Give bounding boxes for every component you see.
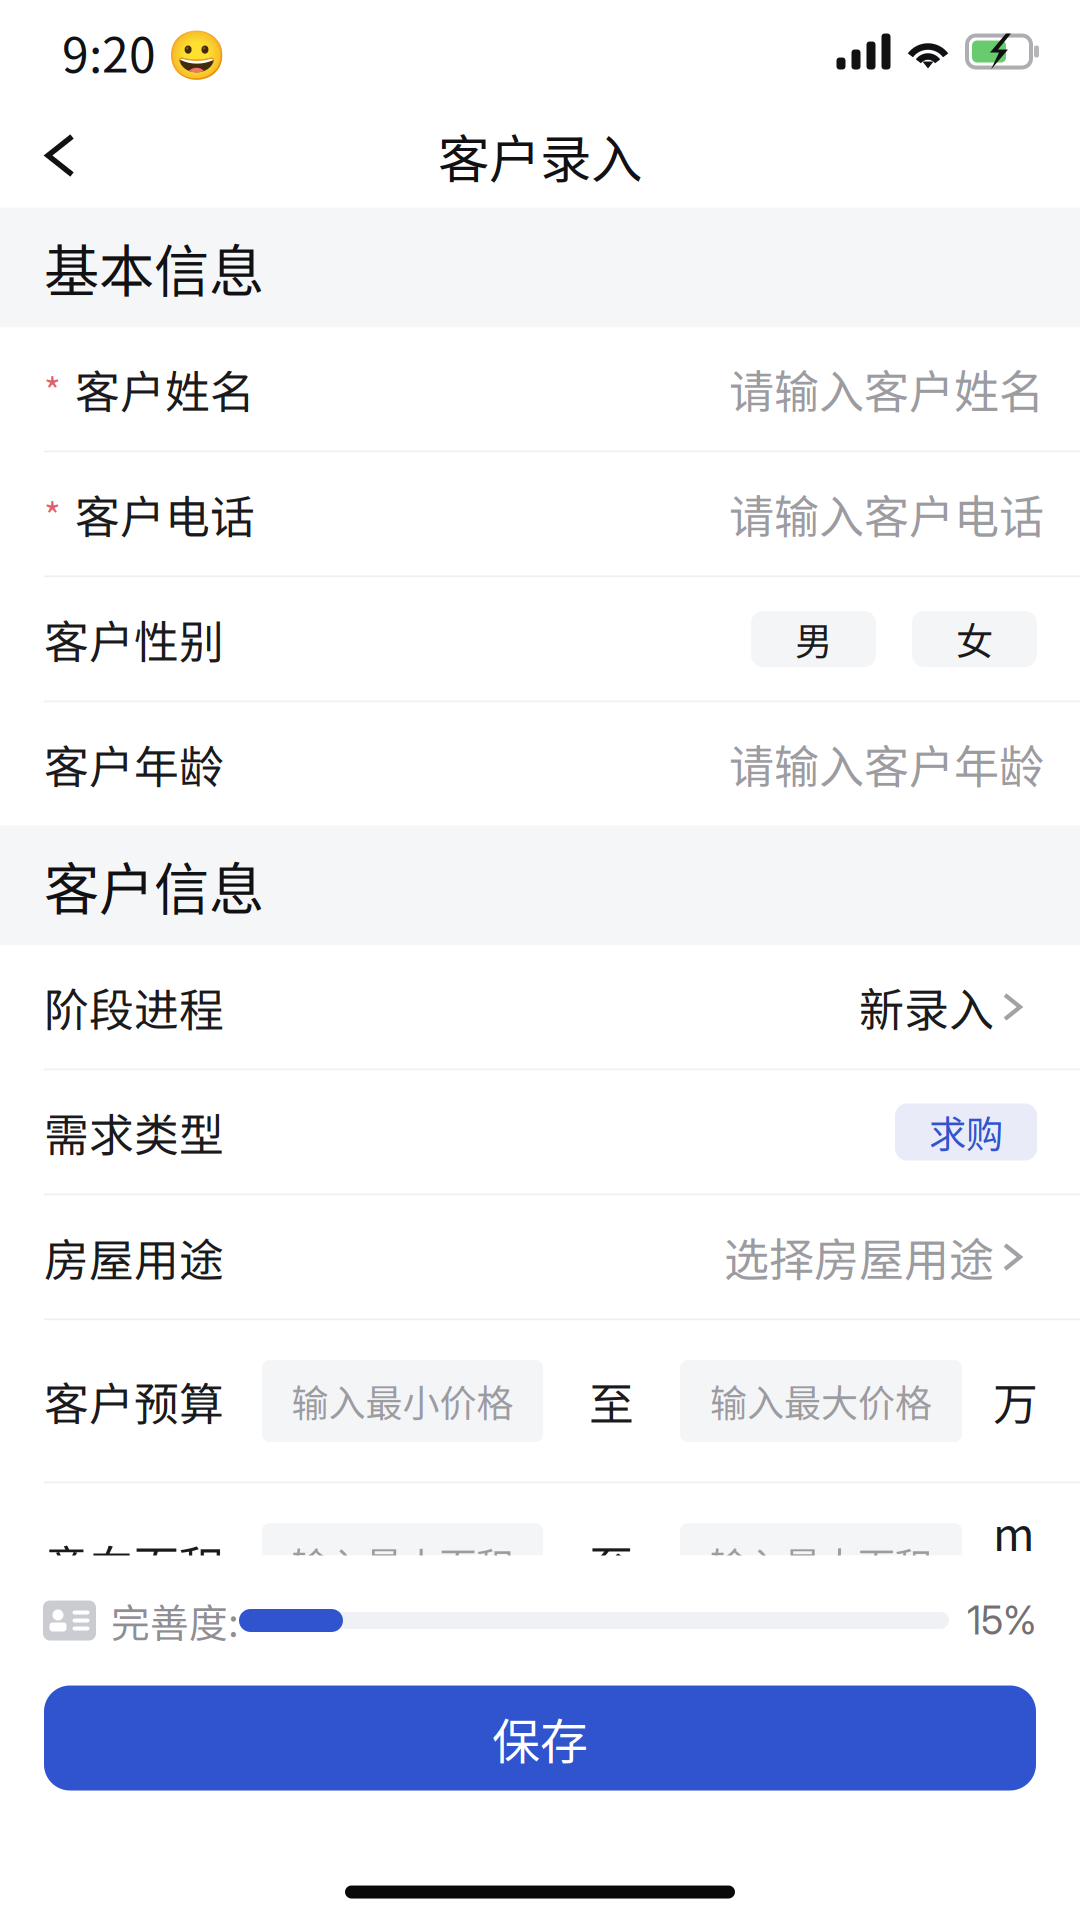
staticText: 阶段进程 bbox=[44, 975, 224, 1039]
staticText: 求购 bbox=[929, 1105, 1003, 1159]
staticText: 输入最小价格 bbox=[291, 1374, 513, 1428]
button[interactable]: 保存 bbox=[44, 1685, 1036, 1790]
staticText: * bbox=[44, 363, 61, 415]
staticText: 输入最大面积 bbox=[710, 1537, 932, 1591]
staticText: 客户年龄 bbox=[44, 732, 224, 796]
staticText: * bbox=[44, 488, 61, 540]
staticText: 客户电话 bbox=[75, 482, 255, 546]
staticText: 保存 bbox=[492, 1703, 588, 1773]
staticText: 9:20 😀 bbox=[62, 17, 227, 86]
staticText: 请输入客户姓名 bbox=[729, 356, 1044, 422]
staticText: 输入最大价格 bbox=[710, 1374, 932, 1428]
staticText: 请输入客户电话 bbox=[729, 481, 1044, 547]
staticText: 万 bbox=[993, 1369, 1038, 1433]
staticText: 完善度: bbox=[111, 1592, 239, 1648]
staticText: 新录入 bbox=[859, 974, 994, 1040]
staticText: 至 bbox=[589, 1532, 634, 1596]
staticText: 输入最小面积 bbox=[291, 1537, 513, 1591]
staticText: 客户录入 bbox=[438, 118, 642, 193]
staticText: 15% bbox=[967, 1597, 1037, 1644]
staticText: 客户姓名 bbox=[75, 357, 255, 421]
staticText: 选择房屋用途 bbox=[724, 1224, 994, 1290]
staticText: m² bbox=[993, 1499, 1034, 1629]
staticText: 基本信息 bbox=[44, 227, 264, 307]
staticText: 客户预算 bbox=[44, 1369, 224, 1433]
staticText: 客户信息 bbox=[44, 845, 264, 925]
staticText: 女 bbox=[956, 612, 993, 666]
button[interactable]: 求购 bbox=[895, 1103, 1037, 1160]
staticText: 客户性别 bbox=[44, 607, 224, 671]
staticText: 意向面积 bbox=[44, 1532, 224, 1596]
button[interactable]: Back bbox=[10, 105, 110, 205]
button[interactable]: 房屋用途 bbox=[0, 1195, 1080, 1318]
staticText: 至 bbox=[589, 1369, 634, 1433]
staticText: 房屋用途 bbox=[44, 1225, 224, 1289]
staticText: 男 bbox=[795, 612, 832, 666]
staticText: 需求类型 bbox=[44, 1100, 224, 1164]
button[interactable]: 男 bbox=[751, 611, 876, 667]
button[interactable]: 阶段进程 bbox=[0, 945, 1080, 1068]
button[interactable]: 女 bbox=[912, 611, 1037, 667]
staticText: 请输入客户年龄 bbox=[729, 731, 1044, 797]
